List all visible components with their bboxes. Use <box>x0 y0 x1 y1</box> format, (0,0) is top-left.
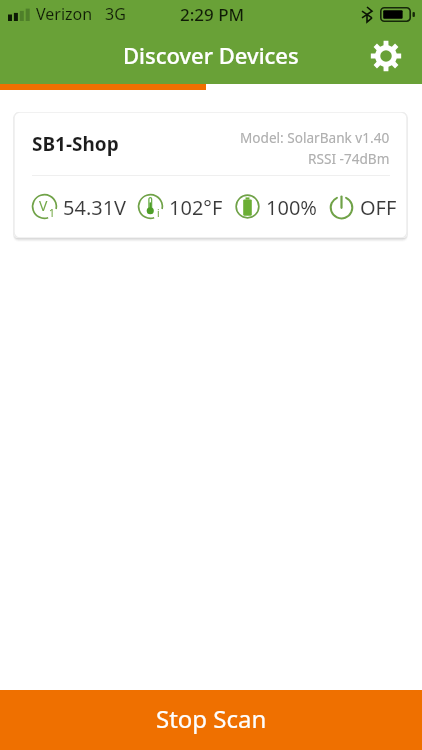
button[interactable]: Stop Scan <box>0 690 422 750</box>
staticText: RSSI -74dBm <box>308 149 390 168</box>
staticText: Model: SolarBank v1.40 <box>240 128 390 147</box>
staticText: i <box>157 206 160 220</box>
staticText: Stop Scan <box>156 702 267 735</box>
staticText: Verizon <box>36 3 93 25</box>
staticText: 102°F <box>169 194 223 221</box>
button[interactable]: Settings <box>362 32 410 80</box>
staticText: 1 <box>49 206 55 220</box>
staticText: OFF <box>360 194 397 221</box>
staticText: Discover Devices <box>123 40 299 70</box>
button[interactable]: SB1-Shop <box>14 112 407 238</box>
staticText: 54.31V <box>63 194 127 221</box>
staticText: V <box>39 196 48 215</box>
staticText: 100% <box>266 194 317 221</box>
staticText: 3G <box>105 3 126 25</box>
staticText: SB1-Shop <box>32 131 119 157</box>
staticText: 2:29 PM <box>180 3 245 26</box>
